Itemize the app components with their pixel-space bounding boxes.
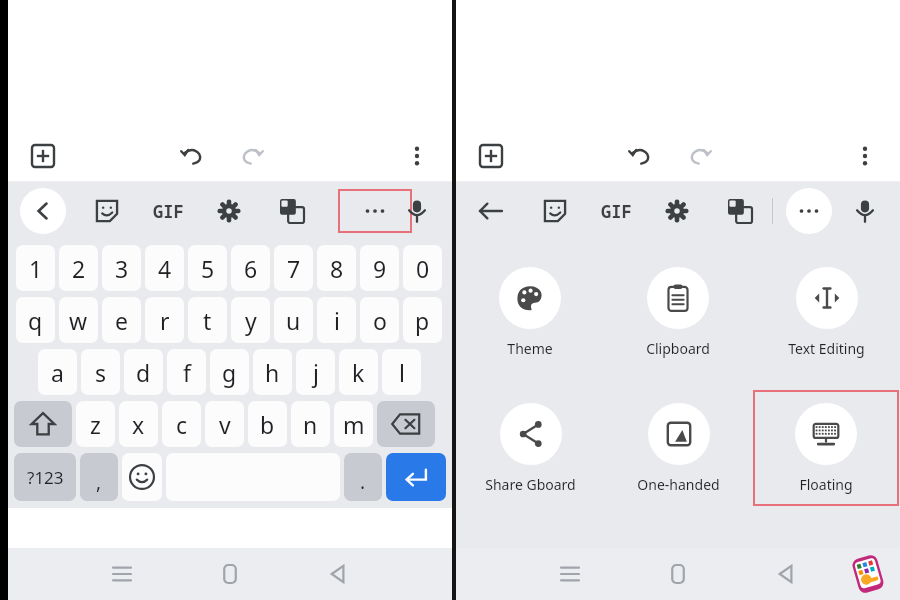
staticText: a	[51, 357, 64, 388]
button[interactable]: Clipboard	[642, 263, 714, 362]
button[interactable]: Backspace	[377, 401, 435, 447]
staticText: v	[219, 409, 231, 440]
button[interactable]: 1	[16, 245, 55, 291]
button[interactable]: Undo	[620, 136, 660, 176]
button[interactable]: Back	[315, 551, 361, 597]
button[interactable]: Emoji	[122, 453, 162, 501]
staticText: ,	[96, 469, 102, 495]
button[interactable]: w	[59, 297, 98, 343]
button[interactable]: Voice input	[844, 190, 886, 232]
button[interactable]: .	[344, 453, 382, 501]
button[interactable]: Translate	[719, 190, 761, 232]
button[interactable]: o	[360, 297, 399, 343]
staticText: g	[222, 357, 237, 388]
button[interactable]: Undo	[172, 136, 212, 176]
button[interactable]: Settings	[208, 190, 250, 232]
staticText: 4	[158, 253, 172, 284]
button[interactable]: l	[382, 349, 421, 395]
staticText: f	[183, 357, 191, 388]
button[interactable]: e	[102, 297, 141, 343]
button[interactable]: One-handed	[633, 399, 724, 498]
button[interactable]: Home	[207, 551, 253, 597]
button[interactable]: y	[231, 297, 270, 343]
button[interactable]: t	[188, 297, 227, 343]
button[interactable]: More options	[848, 139, 882, 173]
button[interactable]: Share Gboard	[481, 399, 580, 498]
button[interactable]: Stickers	[534, 190, 576, 232]
button[interactable]: p	[403, 297, 442, 343]
button[interactable]: Text Editing	[784, 263, 869, 362]
button[interactable]: Back	[468, 188, 514, 234]
button[interactable]: q	[16, 297, 55, 343]
button[interactable]: ,	[80, 453, 118, 501]
button[interactable]: x	[119, 401, 158, 447]
button[interactable]: s	[81, 349, 120, 395]
button[interactable]: r	[145, 297, 184, 343]
staticText: Floating	[799, 475, 853, 494]
staticText: x	[132, 409, 145, 440]
button[interactable]: Recents	[99, 551, 145, 597]
button[interactable]: ?123	[14, 453, 76, 501]
button[interactable]: 3	[102, 245, 141, 291]
button[interactable]: 8	[317, 245, 356, 291]
button[interactable]: n	[291, 401, 330, 447]
button[interactable]: Home	[655, 551, 701, 597]
button[interactable]: More	[786, 188, 832, 234]
button[interactable]: 6	[231, 245, 270, 291]
button[interactable]: 0	[403, 245, 442, 291]
button[interactable]: Stickers	[86, 190, 128, 232]
button[interactable]: j	[296, 349, 335, 395]
button[interactable]: u	[274, 297, 313, 343]
staticText: i	[334, 305, 340, 336]
button[interactable]: 7	[274, 245, 313, 291]
button[interactable]: a	[38, 349, 77, 395]
staticText: d	[136, 357, 151, 388]
staticText: w	[69, 305, 88, 336]
button[interactable]: Add	[26, 139, 60, 173]
button[interactable]: Redo	[680, 136, 720, 176]
button[interactable]: Shift	[14, 401, 72, 447]
staticText: 1	[29, 253, 43, 284]
staticText: 7	[287, 253, 301, 284]
staticText: j	[313, 357, 319, 388]
button[interactable]: h	[253, 349, 292, 395]
staticText: GIF	[601, 200, 632, 223]
button[interactable]: Settings	[656, 190, 698, 232]
button[interactable]: z	[76, 401, 115, 447]
button[interactable]: 5	[188, 245, 227, 291]
staticText: ?123	[27, 466, 64, 489]
button[interactable]: Back	[20, 188, 66, 234]
button[interactable]: k	[339, 349, 378, 395]
staticText: l	[399, 357, 405, 388]
staticText: p	[415, 305, 430, 336]
button[interactable]: Floating	[791, 399, 861, 498]
button[interactable]: b	[248, 401, 287, 447]
button[interactable]: f	[167, 349, 206, 395]
button[interactable]: Translate	[271, 190, 313, 232]
button[interactable]: Redo	[232, 136, 272, 176]
staticText: u	[286, 305, 301, 336]
button[interactable]: Voice input	[396, 190, 438, 232]
staticText: GIF	[153, 200, 184, 223]
staticText: z	[90, 409, 101, 440]
button[interactable]: g	[210, 349, 249, 395]
button[interactable]: i	[317, 297, 356, 343]
button[interactable]: v	[205, 401, 244, 447]
button[interactable]: 9	[360, 245, 399, 291]
button[interactable]: d	[124, 349, 163, 395]
button[interactable]: m	[334, 401, 373, 447]
button[interactable]: More options	[400, 139, 434, 173]
staticText: o	[373, 305, 387, 336]
button[interactable]: GIF	[593, 188, 639, 234]
button[interactable]: GIF	[145, 188, 191, 234]
button[interactable]: Add	[474, 139, 508, 173]
button[interactable]: Enter	[386, 453, 446, 501]
button[interactable]: More	[340, 191, 410, 231]
button[interactable]: 2	[59, 245, 98, 291]
button[interactable]: Theme	[495, 263, 565, 362]
button[interactable]: c	[162, 401, 201, 447]
button[interactable]: 4	[145, 245, 184, 291]
button[interactable]: Back	[763, 551, 809, 597]
button[interactable]: Recents	[547, 551, 593, 597]
